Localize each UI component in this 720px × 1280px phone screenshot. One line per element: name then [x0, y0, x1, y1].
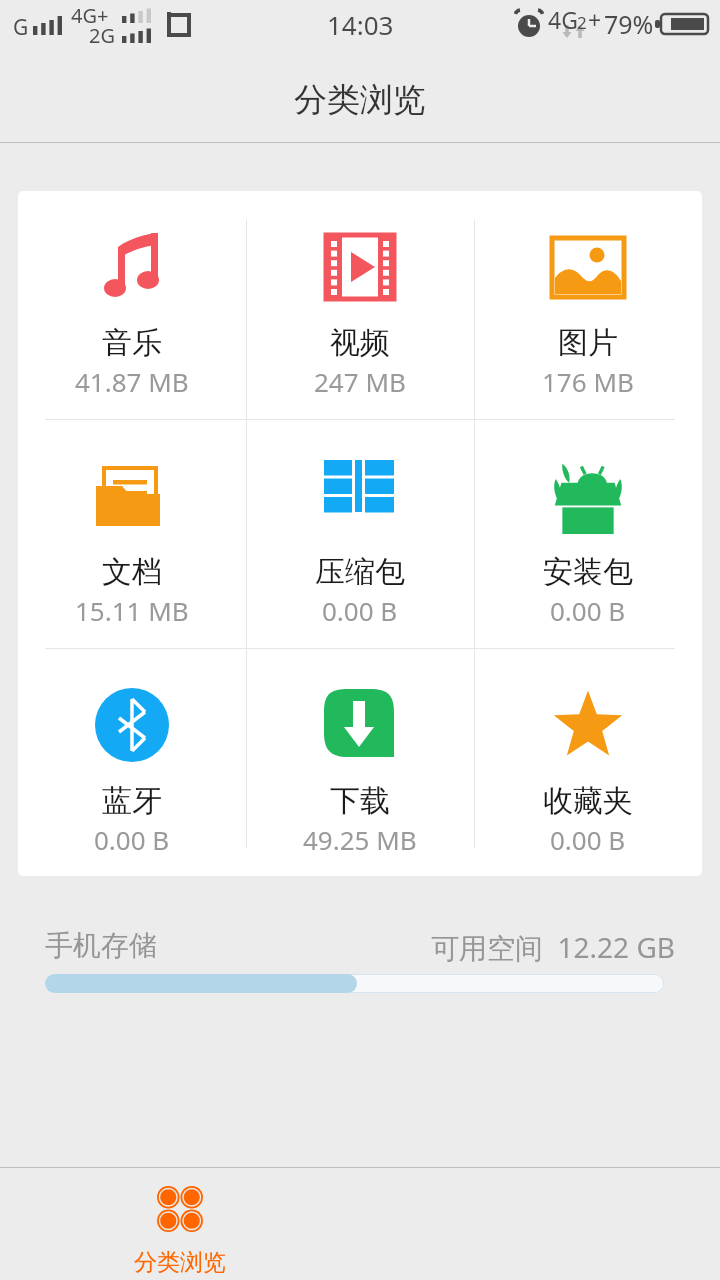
staticText: + [588, 4, 602, 35]
staticText: 41.87 MB [75, 364, 189, 399]
staticText: 0.00 B [322, 593, 398, 628]
button[interactable]: 压缩包 [246, 420, 474, 648]
staticText: 0.00 B [94, 822, 170, 857]
button[interactable]: 下载 [246, 649, 474, 876]
staticText: 247 MB [314, 364, 406, 399]
staticText: 0.00 B [550, 593, 626, 628]
staticText: 0.00 B [550, 822, 626, 857]
button[interactable]: 分类浏览 [0, 1167, 360, 1280]
staticText: 分类浏览 [134, 1248, 226, 1277]
staticText: 15.11 MB [75, 593, 189, 628]
staticText: 手机存储 [45, 928, 157, 963]
staticText: 4G+ [71, 2, 109, 29]
button[interactable]: 安装包 [474, 420, 702, 648]
staticText: 安装包 [543, 553, 633, 591]
button[interactable]: 图片 [474, 191, 702, 419]
staticText: 音乐 [102, 324, 162, 362]
staticText: 176 MB [542, 364, 634, 399]
staticText: 文档 [102, 553, 162, 591]
staticText: 压缩包 [315, 553, 405, 591]
staticText: 收藏夹 [543, 782, 633, 820]
staticText: 蓝牙 [102, 782, 162, 820]
staticText: 14:03 [327, 7, 394, 42]
staticText: G [13, 13, 29, 42]
button[interactable]: 文档 [18, 420, 246, 648]
button[interactable]: 音乐 [18, 191, 246, 419]
button[interactable]: 视频 [246, 191, 474, 419]
staticText: 2G [89, 22, 115, 49]
staticText: 图片 [558, 324, 618, 362]
staticText: 下载 [330, 782, 390, 820]
staticText: 79% [604, 7, 654, 41]
button[interactable]: 收藏夹 [474, 649, 702, 876]
staticText: 2 [577, 11, 587, 34]
staticText: 可用空间 12.22 GB [431, 928, 675, 966]
staticText: 4G [548, 4, 578, 35]
staticText: 49.25 MB [303, 822, 417, 857]
staticText: 视频 [330, 324, 390, 362]
staticText: 分类浏览 [294, 79, 426, 121]
button[interactable]: 蓝牙 [18, 649, 246, 876]
